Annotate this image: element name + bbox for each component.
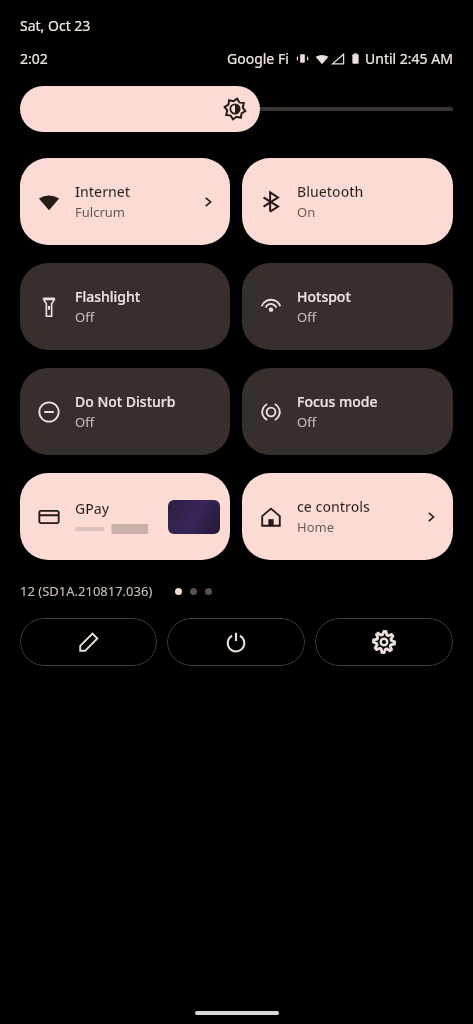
staticText: Off [297,413,317,431]
staticText: Google Fi [227,49,289,68]
staticText: Off [75,413,95,431]
staticText: GPay [75,499,110,518]
button[interactable]: Brightness [20,86,453,132]
staticText: Home [297,518,334,536]
staticText: Internet [75,182,131,201]
button[interactable]: Settings [315,618,453,666]
button[interactable]: Do Not Disturb [20,368,230,455]
staticText: On [297,203,316,221]
button[interactable]: GPay [20,473,230,560]
staticText: Until 2:45 AM [365,49,453,68]
staticText: Flashlight [75,287,141,306]
button[interactable]: ce controls [242,473,453,560]
staticText: Off [297,308,317,326]
staticText: 12 (SD1A.210817.036) [20,582,153,600]
button[interactable]: Flashlight [20,263,230,350]
button[interactable]: Bluetooth [242,158,453,245]
staticText: Do Not Disturb [75,392,176,411]
staticText: Bluetooth [297,182,364,201]
button[interactable]: Focus mode [242,368,453,455]
button[interactable]: Edit tiles [20,618,157,666]
staticText: Fulcrum [75,203,125,221]
button[interactable]: Power [167,618,305,666]
button[interactable]: Internet [20,158,230,245]
staticText: Focus mode [297,392,378,411]
staticText: Off [75,308,95,326]
staticText: ce controls [297,497,370,516]
staticText: 2:02 [20,49,48,68]
button[interactable]: Hotspot [242,263,453,350]
staticText: Sat, Oct 23 [20,16,91,35]
staticText: Hotspot [297,287,351,306]
